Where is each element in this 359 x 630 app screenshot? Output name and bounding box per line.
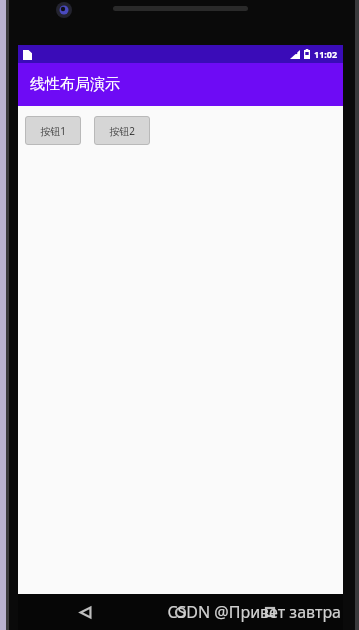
staticText: CSDN @Привет завтра: [167, 601, 341, 623]
button[interactable]: Home: [168, 600, 192, 624]
staticText: 按钮2: [109, 124, 135, 138]
staticText: 按钮1: [40, 124, 66, 138]
button[interactable]: Recent apps: [258, 600, 282, 624]
button[interactable]: 按钮1: [25, 116, 81, 145]
button[interactable]: 按钮2: [94, 116, 150, 145]
staticText: 线性布局演示: [30, 75, 120, 94]
button[interactable]: Back: [73, 600, 97, 624]
staticText: 11:02: [314, 48, 338, 60]
